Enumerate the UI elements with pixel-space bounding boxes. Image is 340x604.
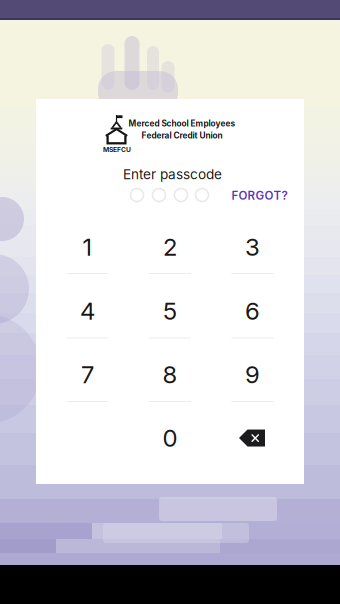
staticText: 5 bbox=[163, 296, 177, 325]
button[interactable]: FORGOT? bbox=[226, 186, 292, 204]
staticText: 0 bbox=[162, 423, 177, 452]
button[interactable]: Delete bbox=[211, 411, 293, 465]
staticText: 7 bbox=[81, 360, 94, 389]
button[interactable]: 5 bbox=[129, 284, 211, 338]
button[interactable]: 6 bbox=[211, 284, 293, 338]
staticText: Merced School Employees bbox=[128, 119, 235, 129]
staticText: 1 bbox=[82, 232, 92, 261]
button[interactable]: 7 bbox=[46, 347, 128, 401]
staticText: FORGOT? bbox=[231, 188, 287, 202]
staticText: MSEFCU bbox=[103, 145, 131, 154]
button[interactable]: 2 bbox=[129, 220, 211, 274]
staticText: 2 bbox=[163, 232, 177, 261]
staticText: Enter passcode bbox=[123, 166, 222, 183]
button[interactable]: 1 bbox=[46, 220, 128, 274]
button[interactable]: 8 bbox=[129, 347, 211, 401]
button[interactable]: 9 bbox=[211, 347, 293, 401]
staticText: Federal Credit Union bbox=[141, 131, 222, 141]
button[interactable]: 3 bbox=[211, 220, 293, 274]
button[interactable]: 4 bbox=[46, 284, 128, 338]
staticText: 8 bbox=[162, 360, 177, 389]
staticText: 4 bbox=[80, 296, 95, 325]
staticText: 3 bbox=[245, 232, 260, 261]
button[interactable]: 0 bbox=[129, 411, 211, 465]
staticText: 6 bbox=[245, 296, 260, 325]
staticText: 9 bbox=[245, 360, 260, 389]
